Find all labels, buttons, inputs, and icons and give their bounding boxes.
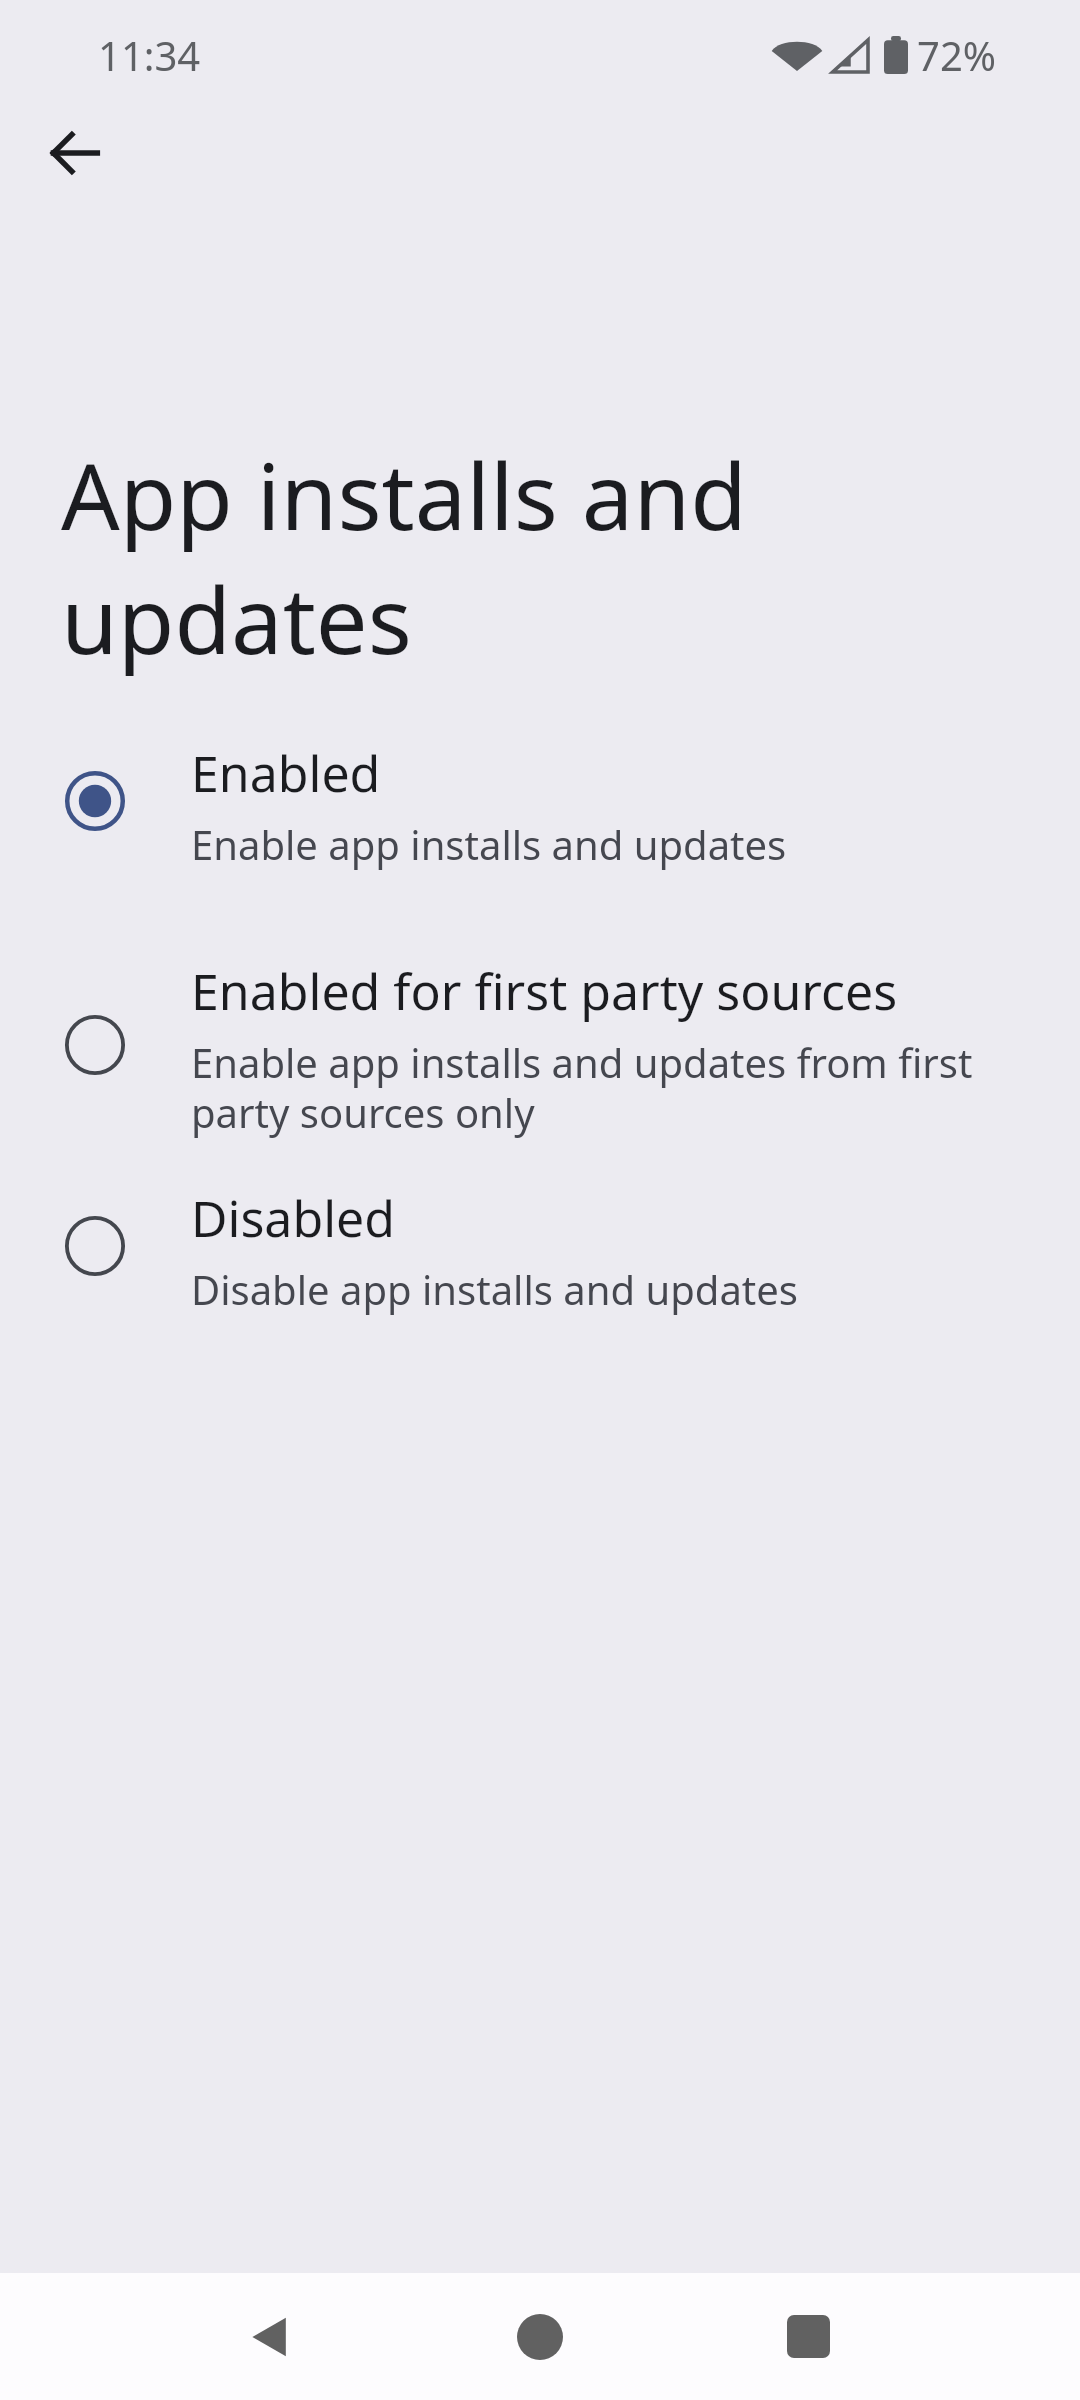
button[interactable]: Back xyxy=(204,2273,336,2400)
staticText: Disable app installs and updates xyxy=(191,1262,798,1316)
staticText: Enabled for first party sources xyxy=(191,957,898,1025)
staticText: Enable app installs and updates xyxy=(191,817,787,871)
button[interactable]: Enabled xyxy=(0,739,1080,871)
staticText: Enabled xyxy=(191,739,381,807)
button[interactable]: Disabled xyxy=(0,1184,1080,1316)
staticText: Enable app installs and updates from fir… xyxy=(191,1035,1016,1140)
button[interactable]: Recent apps xyxy=(742,2273,874,2400)
staticText: 11:34 xyxy=(98,28,201,82)
staticText: App installs and updates xyxy=(61,432,960,681)
staticText: Disabled xyxy=(191,1184,395,1252)
staticText: 72% xyxy=(917,28,996,82)
button[interactable]: Home xyxy=(474,2273,606,2400)
button[interactable]: Enabled for first party sources xyxy=(0,957,1080,1140)
button[interactable]: Navigate up xyxy=(27,105,123,201)
